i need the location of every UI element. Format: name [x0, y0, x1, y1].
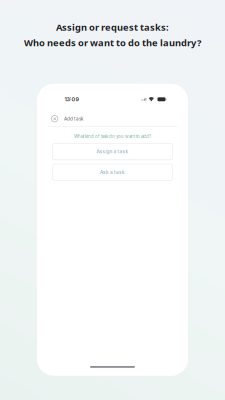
- staticText: Ask a task: [100, 169, 125, 175]
- staticText: 13:09: [64, 96, 78, 103]
- staticText: Assign or request tasks:: [56, 21, 169, 33]
- staticText: Assign a task: [96, 149, 128, 154]
- button[interactable]: Close Add task: [37, 113, 188, 124]
- staticText: Who needs or want to do the laundry?: [24, 36, 201, 49]
- button[interactable]: Assign a task: [52, 143, 173, 160]
- staticText: Add task: [64, 116, 83, 121]
- staticText: What kind of task do you want to add?: [74, 134, 151, 139]
- button[interactable]: Ask a task: [52, 164, 173, 180]
